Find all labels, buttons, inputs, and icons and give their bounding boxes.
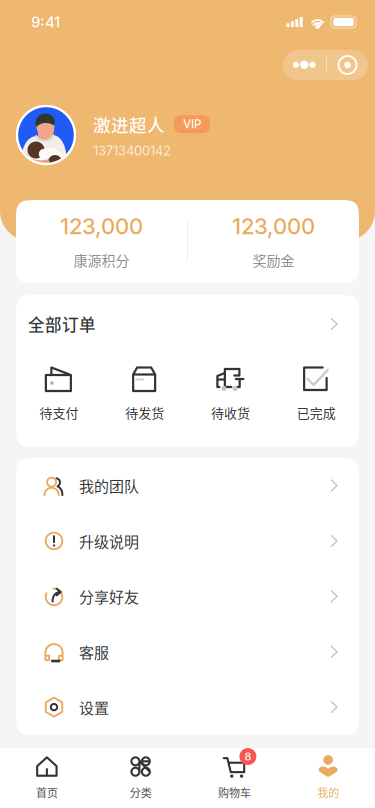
staticText: 我的团队	[79, 475, 139, 496]
staticText: 激进超人	[93, 111, 165, 137]
button[interactable]: 待支付	[16, 364, 102, 422]
staticText: 全部订单	[28, 312, 96, 336]
staticText: 分享好友	[79, 585, 139, 607]
button[interactable]: 首页	[0, 745, 94, 808]
staticText: 康源积分	[73, 250, 129, 270]
staticText: 首页	[36, 784, 58, 800]
staticText: 待发货	[125, 403, 164, 422]
button[interactable]: 待收货	[187, 364, 273, 422]
staticText: 分类	[130, 784, 152, 800]
staticText: VIP	[183, 117, 201, 131]
staticText: 奖励金	[252, 250, 294, 270]
button[interactable]: 我的	[281, 745, 375, 808]
staticText: 购物车	[218, 784, 251, 800]
button[interactable]: 我的团队	[16, 458, 359, 513]
button[interactable]: 已完成	[273, 364, 359, 422]
button[interactable]: More options	[283, 50, 326, 80]
staticText: 客服	[79, 641, 109, 663]
button[interactable]: 待发货	[102, 364, 188, 422]
button[interactable]: 全部订单	[16, 295, 359, 353]
staticText: 123,000	[60, 213, 143, 240]
staticText: 123,000	[232, 213, 315, 240]
staticText: 已完成	[297, 403, 336, 422]
button[interactable]: 升级说明	[16, 513, 359, 569]
button[interactable]: 分类	[94, 745, 188, 808]
staticText: 待支付	[39, 403, 78, 422]
staticText: 升级说明	[79, 530, 139, 552]
staticText: 我的	[317, 784, 339, 800]
staticText: 8	[244, 750, 251, 763]
staticText: 设置	[79, 696, 109, 718]
button[interactable]: Close mini program	[327, 50, 368, 80]
staticText: 9:41	[31, 13, 60, 31]
button[interactable]: 分享好友	[16, 569, 359, 624]
staticText: 待收货	[211, 403, 250, 422]
button[interactable]: 客服	[16, 624, 359, 679]
button[interactable]: 8	[187, 745, 281, 808]
button[interactable]: 设置	[16, 679, 359, 735]
staticText: 13713400142	[93, 143, 171, 158]
